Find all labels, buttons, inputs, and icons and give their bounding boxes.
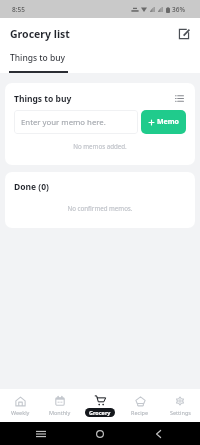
staticText: Grocery list <box>10 27 70 41</box>
button[interactable]: Recents <box>12 422 70 445</box>
button[interactable]: Grocery <box>80 389 120 422</box>
staticText: 8:55 <box>12 5 25 14</box>
staticText: Memo <box>157 117 179 127</box>
staticText: Recipe <box>131 409 149 416</box>
button[interactable]: Edit <box>175 25 193 43</box>
staticText: Grocery <box>89 409 111 416</box>
staticText: Things to buy <box>14 93 72 105</box>
button[interactable]: Settings <box>160 389 200 422</box>
button[interactable]: Home <box>70 422 129 445</box>
staticText: Settings <box>170 409 191 416</box>
button[interactable]: Recipe <box>120 389 160 422</box>
staticText: No confirmed memos. <box>14 204 186 212</box>
staticText: 36% <box>172 5 185 14</box>
button[interactable]: Monthly <box>40 389 80 422</box>
staticText: No memos added. <box>14 142 186 150</box>
staticText: Done (0) <box>14 181 49 193</box>
button[interactable]: Back <box>129 422 188 445</box>
button[interactable]: Things to buy <box>0 50 76 64</box>
button[interactable]: Weekly <box>0 389 40 422</box>
staticText: Things to buy <box>10 52 66 64</box>
button[interactable]: Memo <box>141 110 186 134</box>
staticText: Weekly <box>11 409 30 416</box>
staticText: Monthly <box>49 409 71 416</box>
staticText: Enter your memo here. <box>21 117 106 128</box>
button[interactable]: Sort list <box>173 92 186 105</box>
button[interactable]: Enter your memo here. <box>14 110 138 134</box>
